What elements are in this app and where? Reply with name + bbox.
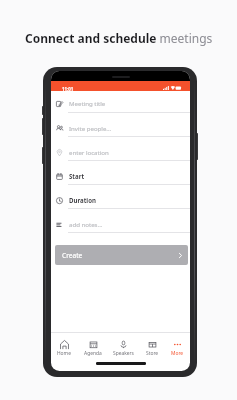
staticText: More (171, 350, 184, 357)
staticText: Create (62, 251, 83, 260)
button[interactable]: Speakers (109, 333, 137, 358)
staticText: Speakers (113, 350, 134, 357)
button[interactable]: Store (138, 333, 166, 358)
button[interactable]: More (163, 333, 190, 358)
staticText: Connect and schedule meetings (25, 30, 213, 46)
button[interactable]: Home (51, 333, 78, 358)
staticText: Store (146, 350, 159, 357)
staticText: Start (69, 172, 85, 180)
staticText: add notes... (69, 220, 103, 228)
button[interactable]: Agenda (79, 333, 107, 358)
button[interactable]: add notes... (51, 209, 190, 233)
button[interactable]: Create (55, 245, 188, 265)
button[interactable]: Start (51, 161, 190, 185)
staticText: Meeting title (69, 99, 106, 107)
button[interactable]: Invite people... (51, 113, 190, 137)
button[interactable]: enter location (51, 137, 190, 161)
staticText: Home (57, 350, 71, 357)
button[interactable]: Duration (51, 185, 190, 209)
staticText: Duration (69, 196, 96, 204)
staticText: Agenda (84, 350, 102, 357)
staticText: Invite people... (69, 124, 112, 132)
button[interactable]: Meeting title (51, 91, 190, 113)
staticText: 11:01 (62, 86, 74, 92)
staticText: enter location (69, 148, 109, 156)
